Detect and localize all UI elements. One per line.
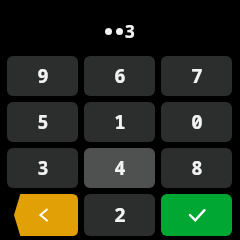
button[interactable]: 6 bbox=[84, 56, 155, 96]
button[interactable]: 2 bbox=[84, 194, 155, 236]
staticText: 7 bbox=[191, 63, 203, 89]
button[interactable]: 7 bbox=[161, 56, 232, 96]
staticText: 6 bbox=[114, 63, 126, 89]
button[interactable]: 4 bbox=[84, 148, 155, 188]
button[interactable]: 9 bbox=[7, 56, 78, 96]
staticText: 2 bbox=[114, 202, 126, 228]
button[interactable]: 1 bbox=[84, 102, 155, 142]
staticText: 3 bbox=[37, 155, 49, 181]
button[interactable]: Backspace bbox=[7, 194, 78, 236]
button[interactable]: Confirm bbox=[161, 194, 232, 236]
staticText: 3 bbox=[125, 20, 135, 43]
staticText: 4 bbox=[114, 155, 126, 181]
staticText: 0 bbox=[191, 109, 203, 135]
button[interactable]: 0 bbox=[161, 102, 232, 142]
staticText: 8 bbox=[191, 155, 203, 181]
button[interactable]: 8 bbox=[161, 148, 232, 188]
button[interactable]: 5 bbox=[7, 102, 78, 142]
button[interactable]: 3 bbox=[7, 148, 78, 188]
staticText: 9 bbox=[37, 63, 49, 89]
staticText: 1 bbox=[114, 109, 126, 135]
staticText: 5 bbox=[37, 109, 49, 135]
